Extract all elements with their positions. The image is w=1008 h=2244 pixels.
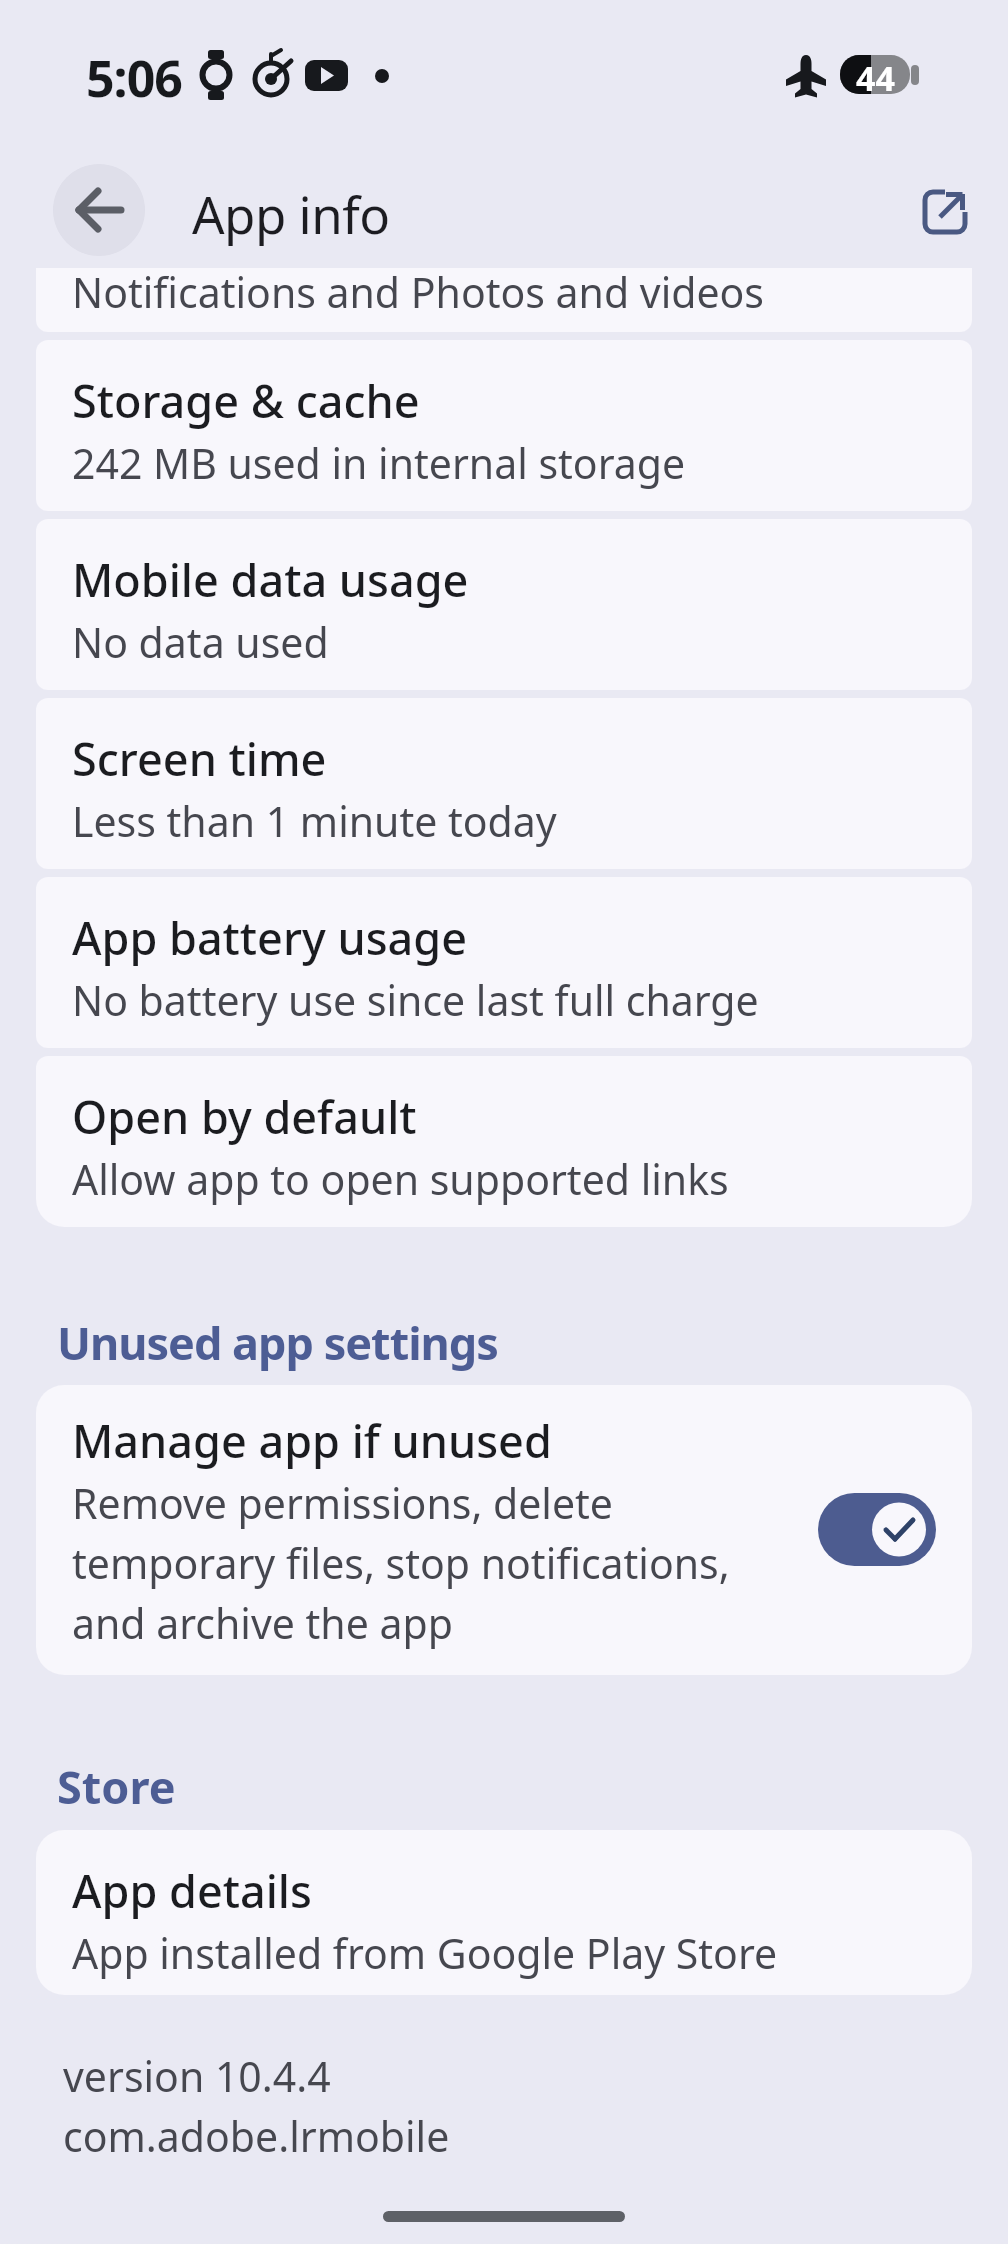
staticText: Notifications and Photos and videos [72, 268, 764, 320]
button[interactable]: Mobile data usage [36, 519, 972, 690]
button[interactable]: Open by default [36, 1056, 972, 1227]
staticText: 242 MB used in internal storage [72, 435, 686, 491]
staticText: Unused app settings [57, 1312, 498, 1373]
staticText: version 10.4.4 [63, 2048, 331, 2104]
staticText: Open by default [72, 1086, 417, 1147]
staticText: Allow app to open supported links [72, 1151, 729, 1207]
staticText: Store [57, 1756, 176, 1817]
staticText: No battery use since last full charge [72, 972, 759, 1028]
button[interactable] [53, 164, 145, 256]
staticText: App installed from Google Play Store [72, 1925, 778, 1981]
staticText: Screen time [72, 728, 327, 789]
staticText: Remove permissions, delete temporary fil… [72, 1475, 730, 1651]
staticText: Less than 1 minute today [72, 793, 557, 849]
staticText: App details [72, 1860, 312, 1921]
staticText: App battery usage [72, 907, 467, 968]
button[interactable]: App details [36, 1830, 972, 1995]
staticText: Manage app if unused [72, 1410, 552, 1471]
button[interactable]: App battery usage [36, 877, 972, 1048]
button[interactable]: Storage & cache [36, 340, 972, 511]
staticText: com.adobe.lrmobile [63, 2108, 450, 2164]
staticText: Storage & cache [72, 370, 420, 431]
button[interactable] [818, 1493, 936, 1566]
staticText: No data used [72, 614, 329, 670]
button[interactable]: Manage app if unused [36, 1385, 972, 1675]
button[interactable]: Notifications and Photos and videos [36, 268, 972, 332]
button[interactable]: Screen time [36, 698, 972, 869]
staticText: App info [192, 179, 390, 248]
button[interactable] [915, 182, 975, 242]
staticText: 5:06 [86, 44, 182, 112]
staticText: Mobile data usage [72, 549, 469, 610]
staticText: 44 [856, 55, 895, 94]
